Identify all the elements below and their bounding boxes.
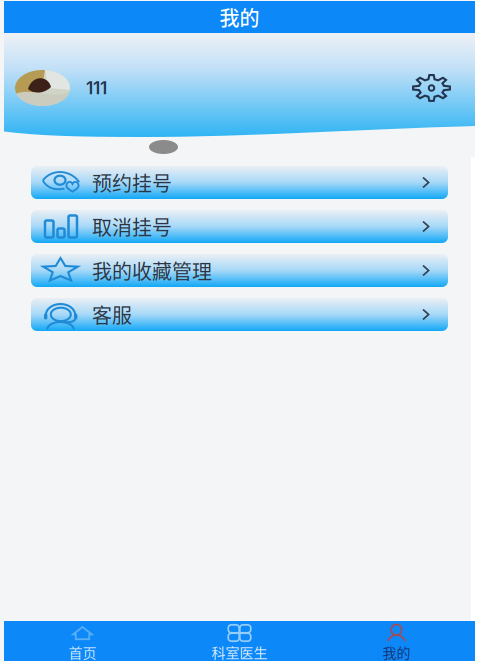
staticText: 科室医生 xyxy=(211,642,267,662)
button[interactable]: 预约挂号 xyxy=(31,166,448,199)
staticText: 客服 xyxy=(92,300,132,329)
staticText: 111 xyxy=(86,77,107,98)
button[interactable]: 取消挂号 xyxy=(31,210,448,243)
staticText: 我的 xyxy=(382,642,410,662)
button[interactable]: 我的收藏管理 xyxy=(31,254,448,287)
button[interactable]: 客服 xyxy=(31,298,448,331)
staticText: 取消挂号 xyxy=(92,212,172,241)
button[interactable]: 科室医生 xyxy=(161,621,318,661)
staticText: 预约挂号 xyxy=(92,168,172,197)
staticText: 我的 xyxy=(219,2,259,31)
staticText: 首页 xyxy=(68,642,96,662)
staticText: 我的收藏管理 xyxy=(92,256,212,285)
button[interactable]: 我的 xyxy=(318,621,475,661)
button[interactable]: 首页 xyxy=(4,621,161,661)
button[interactable]: 设置 xyxy=(413,75,475,101)
